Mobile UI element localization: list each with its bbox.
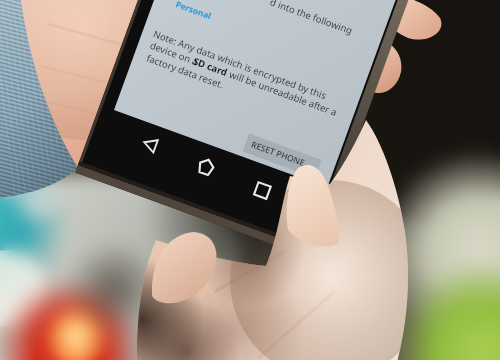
button[interactable]: Hand holding phone showing factory data …	[0, 0, 500, 360]
